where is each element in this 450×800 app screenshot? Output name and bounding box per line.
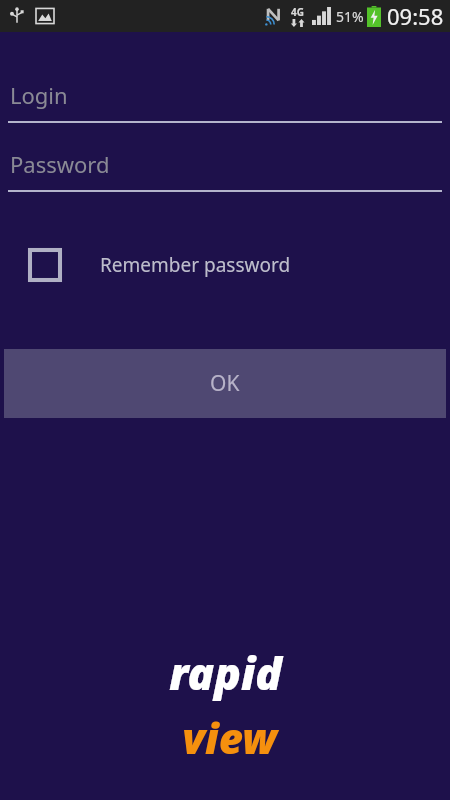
staticText: OK	[210, 369, 240, 398]
staticText: Login	[10, 80, 68, 110]
button[interactable]: Password	[0, 145, 450, 192]
button[interactable]: OK	[4, 349, 446, 418]
button[interactable]: Login	[0, 76, 450, 123]
staticText: Password	[10, 149, 110, 179]
staticText: rapid	[169, 643, 282, 703]
staticText: 09:58	[387, 1, 444, 31]
staticText: 51%	[336, 7, 364, 26]
staticText: Remember password	[100, 252, 291, 278]
button[interactable]: Remember password	[0, 244, 450, 286]
staticText: 4G	[291, 5, 304, 19]
staticText: view	[182, 709, 277, 766]
